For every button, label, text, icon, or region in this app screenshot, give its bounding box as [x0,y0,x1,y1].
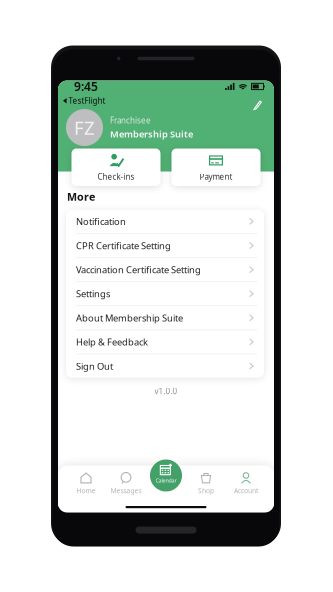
button[interactable]: Messages [106,468,146,498]
staticText: Sign Out [76,360,113,372]
staticText: FZ [74,115,95,140]
button[interactable] [146,468,186,498]
staticText: TestFlight [67,95,106,106]
staticText: Calendar [155,477,176,484]
button[interactable]: Sign Out [66,354,264,378]
staticText: Account [234,486,258,495]
staticText: CPR Certificate Setting [76,239,171,252]
staticText: Help & Feedback [76,336,148,348]
staticText: Notification [76,215,126,228]
button[interactable]: Notification [66,210,264,234]
staticText: Settings [76,287,110,300]
button[interactable]: Calendar [150,459,182,491]
button[interactable]: Home [66,468,106,498]
staticText: Check-ins [97,171,134,182]
staticText: Payment [199,171,232,182]
button[interactable]: About Membership Suite [66,306,264,330]
staticText: Vaccination Certificate Setting [76,263,201,276]
button[interactable]: Account [226,468,266,498]
button[interactable]: Payment [171,148,260,186]
staticText: About Membership Suite [76,312,183,324]
staticText: 9:45 [74,78,98,94]
staticText: Membership Suite [110,128,193,140]
button[interactable]: Vaccination Certificate Setting [66,258,264,282]
button[interactable]: CPR Certificate Setting [66,234,264,258]
button[interactable]: Edit profile [251,97,265,111]
staticText: Messages [110,486,141,495]
button[interactable]: Settings [66,282,264,306]
staticText: Home [76,486,95,495]
button[interactable]: Help & Feedback [66,330,264,354]
staticText: Franchisee [110,115,151,126]
staticText: v1.0.0 [154,386,177,396]
staticText: Shop [198,486,214,495]
button[interactable]: Shop [186,468,226,498]
staticText: More [67,189,95,204]
button[interactable]: Check-ins [71,148,160,186]
